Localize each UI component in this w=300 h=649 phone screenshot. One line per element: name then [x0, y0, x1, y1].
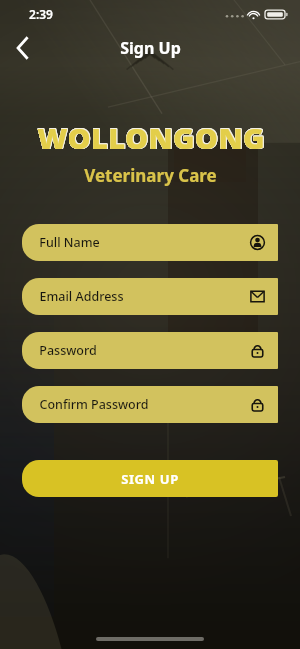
staticText: WOLLONGONG	[37, 117, 265, 156]
staticText: WOLLONGONG	[38, 118, 266, 157]
staticText: Full Name	[39, 234, 100, 251]
button[interactable]: SIGN UP	[22, 460, 278, 497]
staticText: WOLLONGONG	[37, 118, 265, 157]
button[interactable]: Password	[22, 332, 278, 369]
staticText: WOLLONGONG	[37, 118, 265, 157]
button[interactable]: Confirm Password	[22, 386, 278, 423]
staticText: Email Address	[39, 288, 124, 305]
button[interactable]: Back	[0, 28, 44, 68]
staticText: WOLLONGONG	[37, 118, 265, 157]
button[interactable]: Email Address	[22, 278, 278, 315]
staticText: WOLLONGONG	[37, 117, 265, 156]
staticText: WOLLONGONG	[38, 118, 266, 157]
staticText: SIGN UP	[121, 470, 179, 488]
staticText: Sign Up	[120, 37, 181, 59]
button[interactable]: Full Name	[22, 224, 278, 261]
staticText: Confirm Password	[39, 396, 149, 413]
staticText: WOLLONGONG	[38, 117, 266, 156]
staticText: 2:39	[29, 6, 53, 22]
staticText: WOLLONGONG	[37, 118, 265, 157]
staticText: Veterinary Care	[84, 164, 217, 187]
staticText: Password	[39, 342, 97, 359]
